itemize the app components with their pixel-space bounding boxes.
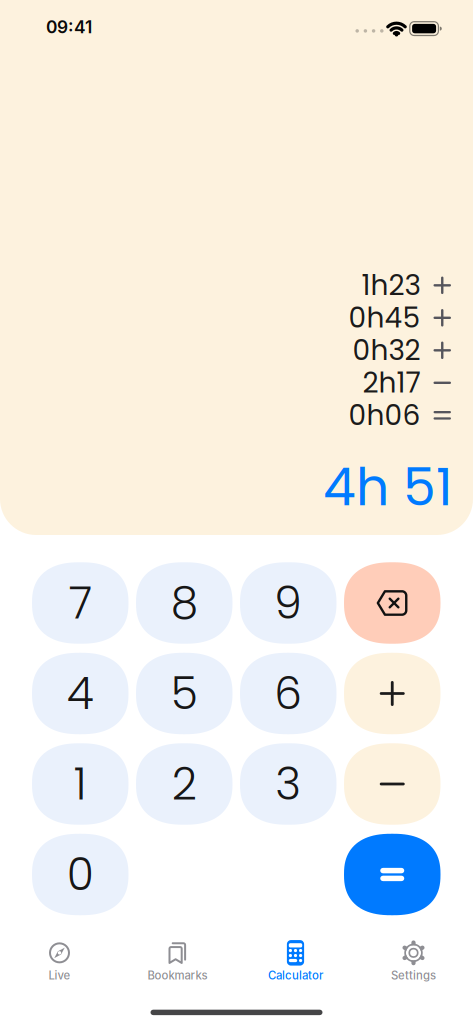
button[interactable]: 6 (240, 653, 336, 734)
staticText: 4 (67, 663, 94, 724)
staticText: 2 (172, 753, 197, 815)
button[interactable]: Subtract (344, 743, 440, 825)
button[interactable]: 9 (240, 562, 336, 644)
staticText: 0 (67, 844, 94, 905)
button[interactable]: 0 (32, 834, 128, 915)
button[interactable]: 2 (136, 743, 232, 825)
staticText: 8 (171, 572, 198, 634)
button[interactable]: 5 (136, 653, 232, 734)
staticText: 3 (275, 753, 301, 815)
button[interactable]: Live (0, 931, 118, 989)
staticText: Live (48, 969, 70, 982)
button[interactable]: Add (344, 653, 440, 734)
staticText: 4h 51 (323, 451, 453, 523)
button[interactable]: 7 (32, 562, 128, 644)
staticText: Calculator (268, 969, 323, 982)
staticText: 9 (274, 572, 302, 634)
button[interactable]: 3 (240, 743, 336, 825)
button[interactable]: Settings (354, 931, 472, 989)
button[interactable]: Calculator (236, 931, 354, 989)
button[interactable]: 1 (32, 743, 128, 825)
staticText: 2h17 (362, 363, 420, 402)
button[interactable]: 8 (136, 562, 232, 644)
staticText: 1h23 (361, 266, 420, 305)
button[interactable]: Delete (344, 562, 440, 644)
staticText: 5 (171, 663, 198, 724)
staticText: 0h32 (352, 331, 420, 370)
staticText: 09:41 (46, 16, 92, 37)
staticText: 0h06 (348, 396, 420, 435)
staticText: 0h45 (348, 298, 420, 337)
staticText: 6 (274, 663, 302, 724)
staticText: 1 (74, 753, 87, 815)
button[interactable]: Bookmarks (118, 931, 236, 989)
button[interactable]: 4 (32, 653, 128, 734)
button[interactable]: Equals (344, 834, 440, 915)
staticText: Bookmarks (147, 969, 207, 982)
staticText: Settings (391, 969, 436, 982)
staticText: 7 (69, 572, 92, 634)
